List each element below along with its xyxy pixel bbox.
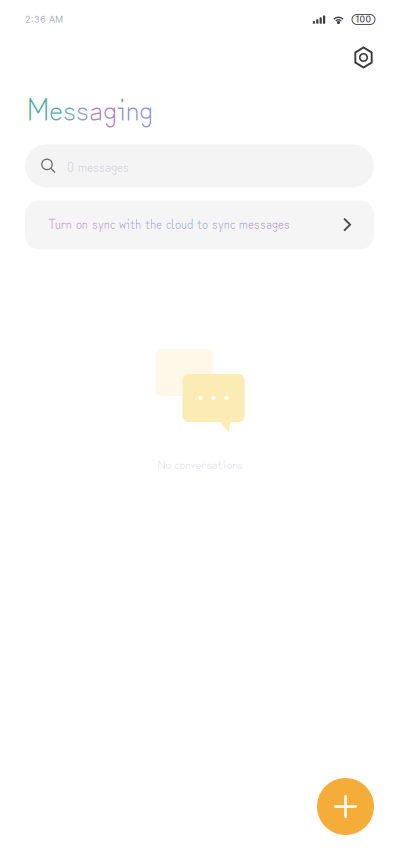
staticText: No conversations [157, 454, 242, 472]
button[interactable]: Settings [346, 37, 381, 78]
button[interactable]: Turn on sync with the cloud to sync mess… [25, 200, 374, 249]
staticText: 0 messages [67, 156, 129, 176]
staticText: Messaging [27, 85, 153, 129]
button[interactable]: New message [317, 778, 374, 835]
staticText: 2:36 AM [25, 14, 63, 25]
staticText: 100 [355, 14, 371, 25]
staticText: Turn on sync with the cloud to sync mess… [48, 213, 290, 232]
button[interactable]: 0 messages [25, 144, 374, 187]
